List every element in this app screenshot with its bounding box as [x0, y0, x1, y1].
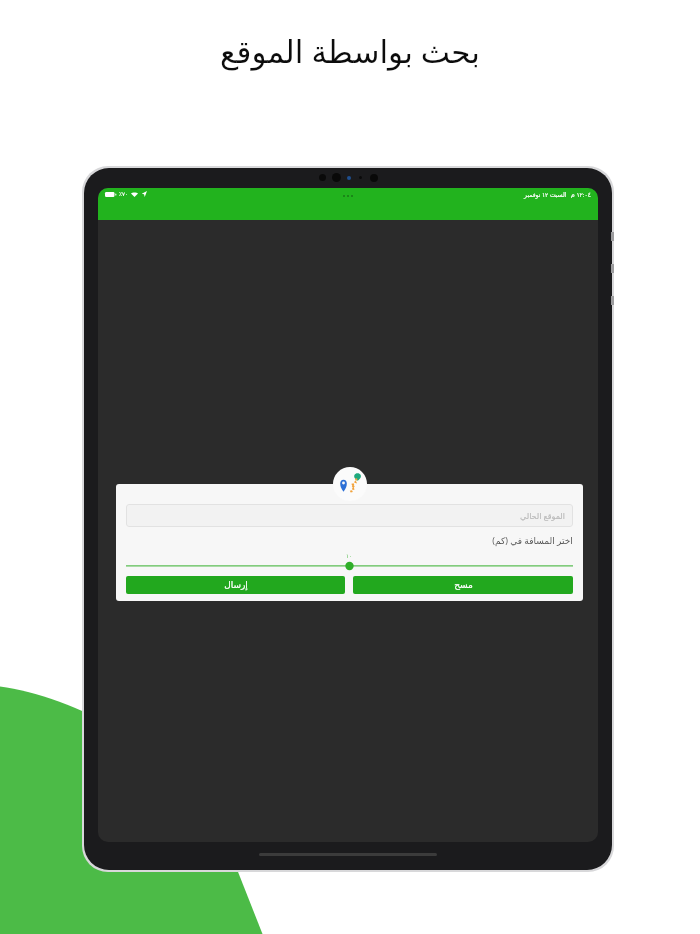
- staticText: اختر المسافة في (كم): [492, 534, 573, 546]
- staticText: بحث بواسطة الموقع: [220, 30, 480, 72]
- button[interactable]: الموقع الحالي: [126, 504, 573, 527]
- button[interactable]: مسح: [353, 576, 573, 594]
- staticText: ٪٧٠: [119, 191, 128, 197]
- button[interactable]: ١٠: [126, 553, 573, 571]
- staticText: مسح: [454, 580, 473, 590]
- staticText: ١٠: [346, 553, 352, 559]
- staticText: الموقع الحالي: [520, 510, 565, 521]
- staticText: إرسال: [224, 580, 248, 590]
- button[interactable]: إرسال: [126, 576, 345, 594]
- other: Location route: [337, 471, 363, 497]
- staticText: ١٢:٠٤ م السبت ١٢ نوفمبر: [524, 191, 591, 199]
